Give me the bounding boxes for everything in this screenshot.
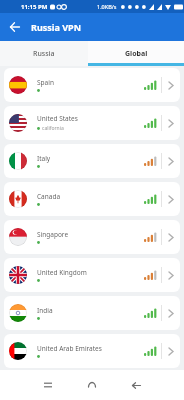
button[interactable]: Singapore bbox=[4, 220, 180, 254]
staticText: United States bbox=[37, 114, 78, 123]
staticText: Canada bbox=[37, 192, 61, 201]
button[interactable]: United Arab Emirates bbox=[4, 334, 180, 368]
button[interactable]: Spain bbox=[4, 68, 180, 102]
button[interactable]: United States bbox=[4, 106, 180, 140]
staticText: Singapore bbox=[37, 230, 69, 239]
staticText: california bbox=[42, 125, 64, 132]
staticText: 1.0KB/s bbox=[97, 3, 117, 10]
staticText: Russia bbox=[33, 49, 55, 59]
button[interactable]: Italy bbox=[4, 144, 180, 178]
button[interactable] bbox=[5, 17, 25, 37]
button[interactable] bbox=[26, 370, 70, 400]
staticText: United Kingdom bbox=[37, 268, 87, 277]
button[interactable]: Canada bbox=[4, 182, 180, 216]
staticText: 11:15 PM bbox=[21, 3, 48, 11]
staticText: United Arab Emirates bbox=[37, 344, 102, 353]
staticText: India bbox=[37, 306, 53, 315]
button[interactable]: Russia bbox=[0, 41, 88, 66]
button[interactable]: India bbox=[4, 296, 180, 330]
staticText: Spain bbox=[37, 78, 54, 87]
staticText: Italy bbox=[37, 154, 51, 163]
button[interactable]: United Kingdom bbox=[4, 258, 180, 292]
button[interactable]: Global bbox=[88, 41, 184, 66]
button[interactable] bbox=[114, 370, 158, 400]
button[interactable] bbox=[70, 370, 114, 400]
staticText: Russia VPN bbox=[31, 21, 81, 33]
staticText: Global bbox=[125, 49, 148, 59]
